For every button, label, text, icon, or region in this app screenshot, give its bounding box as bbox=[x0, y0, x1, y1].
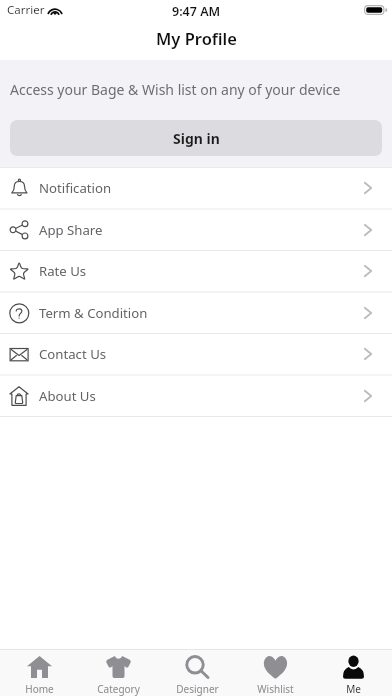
staticText: Sign in bbox=[173, 129, 220, 148]
button[interactable]: Wishlist bbox=[236, 650, 314, 696]
staticText: Notification bbox=[39, 179, 112, 197]
button[interactable]: Me bbox=[314, 650, 392, 696]
staticText: Carrier bbox=[7, 2, 45, 18]
staticText: Category bbox=[97, 682, 140, 696]
staticText: Designer bbox=[176, 682, 219, 696]
button[interactable]: Term & Condition bbox=[0, 292, 392, 334]
button[interactable]: Notification bbox=[0, 167, 392, 209]
staticText: Term & Condition bbox=[39, 304, 148, 322]
button[interactable]: About Us bbox=[0, 375, 392, 417]
button[interactable]: Category bbox=[79, 650, 158, 696]
button[interactable]: Designer bbox=[158, 650, 236, 696]
button[interactable]: Sign in bbox=[10, 120, 382, 156]
button[interactable]: Home bbox=[0, 650, 79, 696]
staticText: Rate Us bbox=[39, 262, 87, 280]
button[interactable]: App Share bbox=[0, 209, 392, 251]
staticText: Home bbox=[25, 682, 54, 696]
staticText: Access your Bage & Wish list on any of y… bbox=[10, 80, 341, 99]
staticText: Contact Us bbox=[39, 345, 107, 363]
staticText: About Us bbox=[39, 387, 96, 405]
staticText: Wishlist bbox=[257, 682, 294, 696]
button[interactable]: Rate Us bbox=[0, 250, 392, 292]
button[interactable]: Contact Us bbox=[0, 333, 392, 375]
staticText: App Share bbox=[39, 221, 103, 239]
staticText: Me bbox=[346, 682, 361, 696]
staticText: 9:47 AM bbox=[172, 3, 221, 20]
staticText: My Profile bbox=[156, 27, 237, 49]
